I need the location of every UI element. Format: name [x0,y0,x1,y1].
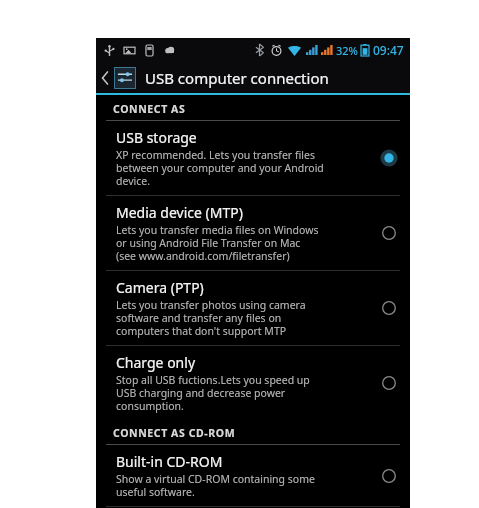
staticText: Lets you transfer photos using camera so… [116,298,306,338]
button[interactable]: Back to USB computer connection [96,62,410,93]
button[interactable]: Charge only [96,346,410,420]
staticText: Lets you transfer media files on Windows… [116,223,319,263]
button[interactable]: Built-in CD-ROM [96,445,410,506]
staticText: CONNECT AS [113,102,186,116]
staticText: USB storage [116,128,197,147]
staticText: 09:47 [373,42,404,58]
staticText: CONNECT AS CD-ROM [113,426,236,440]
staticText: Camera (PTP) [116,278,204,297]
staticText: Media device (MTP) [116,203,243,222]
button[interactable]: Camera (PTP) [96,271,410,345]
button[interactable]: USB storage [96,121,410,195]
staticText: USB computer connection [145,68,329,88]
staticText: Charge only [116,353,196,372]
staticText: Show a virtual CD-ROM containing some us… [116,472,315,499]
button[interactable]: Media device (MTP) [96,196,410,270]
staticText: Stop all USB fuctions.Lets you speed up … [116,373,310,413]
staticText: XP recommended. Lets you transfer files … [116,148,324,188]
staticText: Built-in CD-ROM [116,452,223,471]
staticText: 32% [336,43,358,58]
